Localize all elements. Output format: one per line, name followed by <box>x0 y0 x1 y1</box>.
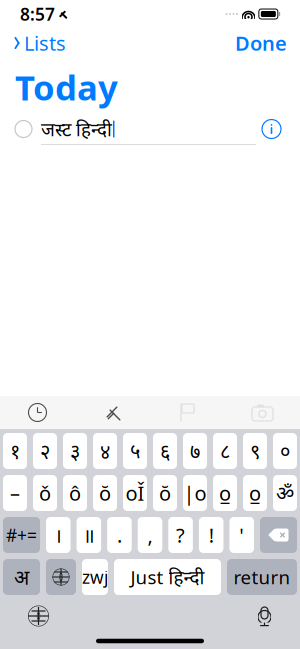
staticText: oǏ <box>125 480 144 506</box>
button[interactable]: Done <box>233 24 289 62</box>
staticText: 8:57 <box>20 2 55 25</box>
button[interactable]: Delete <box>260 517 297 553</box>
staticText: ९ <box>250 438 260 464</box>
button[interactable]: . <box>107 517 132 553</box>
button[interactable]: Just हिन्दी <box>114 559 221 595</box>
staticText: return <box>233 565 290 589</box>
button[interactable]: ९ <box>243 433 267 469</box>
button[interactable]: ŏ <box>153 475 177 511</box>
button[interactable]: ३ <box>63 433 87 469</box>
button[interactable]: ' <box>229 517 254 553</box>
staticText: ô <box>69 480 81 506</box>
staticText: |o <box>183 480 206 506</box>
button[interactable]: ǒ <box>33 475 57 511</box>
staticText: ८ <box>220 438 230 464</box>
button[interactable]: – <box>3 475 27 511</box>
button[interactable]: ४ <box>93 433 117 469</box>
staticText: ० <box>280 438 290 464</box>
staticText: ŏ <box>99 480 111 506</box>
button[interactable]: , <box>138 517 162 553</box>
staticText: जस्ट हिन्दी <box>41 117 112 141</box>
button[interactable]: return <box>227 559 297 595</box>
staticText: #+= <box>6 523 37 546</box>
button[interactable]: Next keyboard <box>46 559 76 595</box>
staticText: अ <box>14 564 29 590</box>
button[interactable]: अ <box>3 559 40 595</box>
staticText: o̲ <box>249 480 261 506</box>
staticText: ६ <box>160 438 170 464</box>
button[interactable]: ६ <box>153 433 177 469</box>
staticText: ५ <box>130 438 140 464</box>
staticText: Just हिन्दी <box>130 565 204 589</box>
staticText: १ <box>10 438 20 464</box>
button[interactable]: ŏ <box>93 475 117 511</box>
button[interactable]: ॥ <box>77 517 101 553</box>
button[interactable]: Dictate <box>251 599 278 632</box>
staticText: ४ <box>100 438 110 464</box>
button[interactable]: १ <box>3 433 27 469</box>
button[interactable]: Lists <box>11 24 68 62</box>
button[interactable]: ७ <box>183 433 207 469</box>
staticText: – <box>10 480 20 506</box>
staticText: o̲ <box>219 480 231 506</box>
button[interactable]: Remind me at a location <box>75 396 150 428</box>
button[interactable]: Mark as completed <box>15 116 41 141</box>
button[interactable]: oǏ <box>123 475 147 511</box>
button[interactable]: o̲ <box>213 475 237 511</box>
button[interactable]: ? <box>168 517 193 553</box>
button[interactable]: । <box>46 517 71 553</box>
staticText: zwj <box>82 565 108 588</box>
button[interactable]: Remind me at a time <box>0 396 75 428</box>
staticText: ŏ <box>159 480 171 506</box>
staticText: ! <box>209 522 214 548</box>
button[interactable]: zwj <box>82 559 108 595</box>
button[interactable]: Flag <box>150 396 225 428</box>
button[interactable]: ५ <box>123 433 147 469</box>
button[interactable]: ० <box>273 433 297 469</box>
button[interactable]: o̲ <box>243 475 267 511</box>
staticText: , <box>147 522 152 548</box>
staticText: । <box>54 522 62 548</box>
staticText: ३ <box>70 438 80 464</box>
button[interactable]: ८ <box>213 433 237 469</box>
staticText: ǒ <box>39 480 51 506</box>
staticText: ' <box>239 522 244 548</box>
button[interactable]: |o <box>183 475 207 511</box>
button[interactable]: #+= <box>3 517 40 553</box>
button[interactable]: ॐ <box>273 475 297 511</box>
button[interactable]: ! <box>199 517 223 553</box>
button[interactable]: ô <box>63 475 87 511</box>
button[interactable]: २ <box>33 433 57 469</box>
button[interactable]: Add attachment <box>225 396 300 428</box>
staticText: Lists <box>24 30 66 56</box>
staticText: Today <box>15 64 118 110</box>
staticText: . <box>117 522 122 548</box>
staticText: ॥ <box>83 522 95 548</box>
staticText: ? <box>176 522 185 548</box>
staticText: Done <box>235 30 287 56</box>
staticText: २ <box>40 438 50 464</box>
staticText: ॐ <box>276 480 294 506</box>
button[interactable]: Details <box>258 115 285 142</box>
button[interactable]: Switch keyboard <box>22 599 55 632</box>
staticText: ७ <box>190 438 200 464</box>
